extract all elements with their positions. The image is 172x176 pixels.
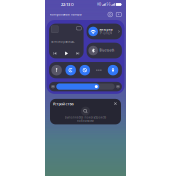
staticText: Интернет bbox=[99, 28, 112, 31]
staticText: 22:13 bbox=[61, 2, 70, 7]
button[interactable]: Close bbox=[112, 101, 118, 107]
staticText: Выполняется поиск устройств bbox=[64, 116, 106, 119]
staticText: поблизости bbox=[77, 119, 94, 123]
staticText: Устройства bbox=[53, 101, 74, 106]
button[interactable]: Её не исправишь… bbox=[49, 24, 84, 58]
staticText: Контрольная панель bbox=[50, 13, 81, 16]
button[interactable]: Bluetooth bbox=[87, 43, 122, 58]
staticText: Её не исправишь… bbox=[51, 40, 75, 43]
button[interactable]: Settings bbox=[106, 10, 114, 19]
button[interactable]: Location bbox=[107, 65, 118, 76]
button[interactable]: Flashlight bbox=[51, 65, 62, 76]
staticText: Bluetooth bbox=[99, 49, 114, 52]
staticText: 5G bbox=[106, 3, 110, 6]
button[interactable]: Интернет bbox=[87, 24, 122, 39]
staticText: TP-Link_F4 bbox=[99, 31, 112, 35]
staticText: HD bbox=[97, 3, 101, 6]
button[interactable]: Do not disturb bbox=[79, 65, 90, 76]
button[interactable]: Auto-rotate bbox=[65, 65, 76, 76]
button[interactable]: Screen recorder bbox=[114, 10, 123, 19]
